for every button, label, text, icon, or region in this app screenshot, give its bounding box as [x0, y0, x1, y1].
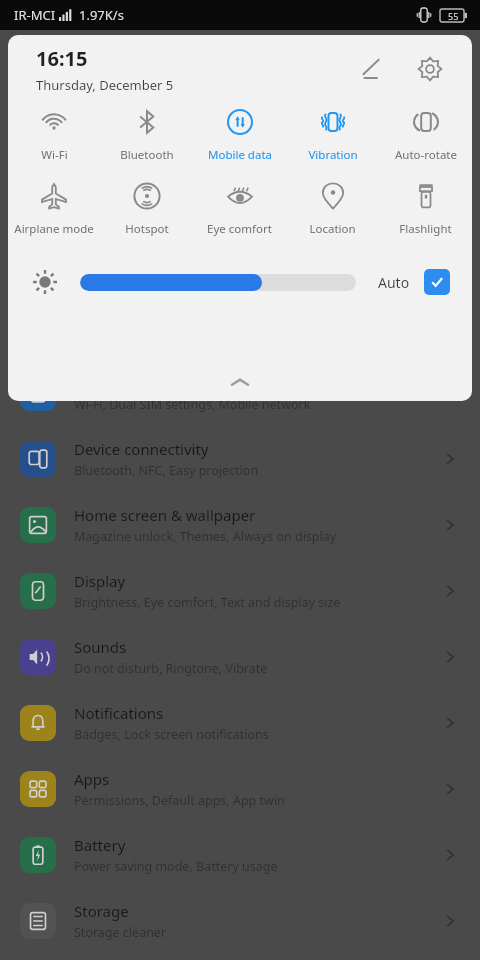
staticText: Notifications	[74, 703, 164, 723]
staticText: Eye comfort	[207, 221, 272, 237]
button[interactable]: Auto-rotate	[379, 103, 472, 167]
button[interactable]: Vibration	[286, 103, 379, 167]
button[interactable]: Wi-Fi	[8, 103, 100, 167]
staticText: Battery	[74, 835, 126, 855]
staticText: Bluetooth	[120, 147, 174, 163]
staticText: Flashlight	[399, 221, 452, 237]
button[interactable]: Flashlight	[379, 177, 472, 241]
button[interactable]: Hotspot	[100, 177, 193, 241]
staticText: Storage	[74, 901, 129, 921]
staticText: Mobile data	[208, 147, 272, 163]
button[interactable]: Eye comfort	[193, 177, 286, 241]
button[interactable]: Display	[0, 558, 480, 624]
staticText: 55	[448, 10, 459, 22]
staticText: 1.97K/s	[79, 6, 124, 24]
staticText: Apps	[74, 769, 110, 789]
staticText: Sounds	[74, 637, 127, 657]
staticText: Display	[74, 571, 126, 591]
button[interactable]: Edit	[352, 49, 392, 89]
staticText: IR-MCI	[14, 6, 56, 24]
staticText: Magazine unlock, Themes, Always on displ…	[74, 528, 337, 545]
button[interactable]	[80, 274, 356, 291]
staticText: Permissions, Default apps, App twin	[74, 792, 285, 809]
staticText: Wi-Fi	[41, 147, 68, 163]
button[interactable]: Wireless & networks	[0, 360, 480, 426]
button[interactable]: Auto brightness	[424, 269, 450, 295]
button[interactable]: Airplane mode	[8, 177, 100, 241]
button[interactable]: Mobile data	[193, 103, 286, 167]
staticText: Auto	[378, 273, 410, 292]
button[interactable]: Home screen & wallpaper	[0, 492, 480, 558]
button[interactable]: Bluetooth	[100, 103, 193, 167]
button[interactable]: Location	[286, 177, 379, 241]
staticText: Location	[309, 221, 356, 237]
button[interactable]: Collapse	[8, 367, 472, 397]
staticText: Device connectivity	[74, 439, 209, 459]
button[interactable]: Battery	[0, 822, 480, 888]
staticText: Badges, Lock screen notifications	[74, 726, 269, 743]
staticText: Bluetooth, NFC, Easy projection	[74, 462, 259, 479]
staticText: Airplane mode	[14, 221, 94, 237]
staticText: Wi-Fi, Dual SIM settings, Mobile network	[74, 396, 311, 413]
staticText: Storage cleaner	[74, 924, 167, 941]
staticText: Vibration	[308, 147, 358, 163]
staticText: Thursday, December 5	[36, 76, 174, 94]
staticText: Brightness, Eye comfort, Text and displa…	[74, 594, 341, 611]
button[interactable]: Device connectivity	[0, 426, 480, 492]
button[interactable]: Sounds	[0, 624, 480, 690]
staticText: Do not disturb, Ringtone, Vibrate	[74, 660, 268, 677]
staticText: 16:15	[36, 45, 88, 72]
staticText: Auto-rotate	[395, 147, 457, 163]
staticText: Power saving mode, Battery usage	[74, 858, 278, 875]
button[interactable]: Apps	[0, 756, 480, 822]
button[interactable]: Notifications	[0, 690, 480, 756]
staticText: Hotspot	[125, 221, 169, 237]
staticText: Home screen & wallpaper	[74, 505, 256, 525]
button[interactable]: Settings	[410, 49, 450, 89]
button[interactable]: Storage	[0, 888, 480, 954]
